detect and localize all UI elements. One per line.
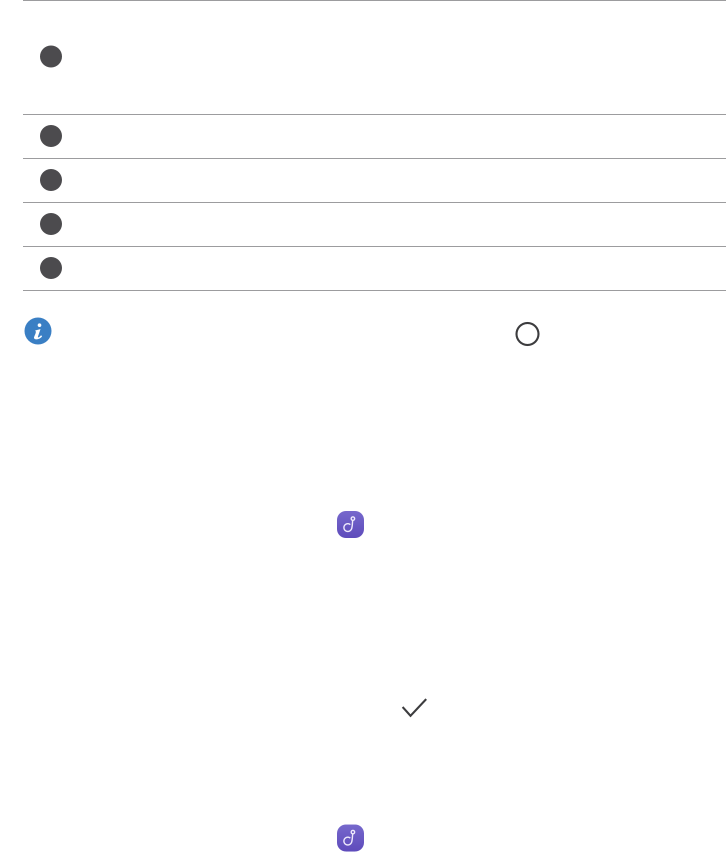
button[interactable] [0, 115, 726, 158]
button[interactable]: Information [24, 317, 51, 344]
button[interactable] [0, 159, 726, 202]
button[interactable]: Select [516, 323, 538, 345]
button[interactable] [0, 1, 726, 114]
button[interactable] [0, 203, 726, 246]
button[interactable] [0, 247, 726, 290]
